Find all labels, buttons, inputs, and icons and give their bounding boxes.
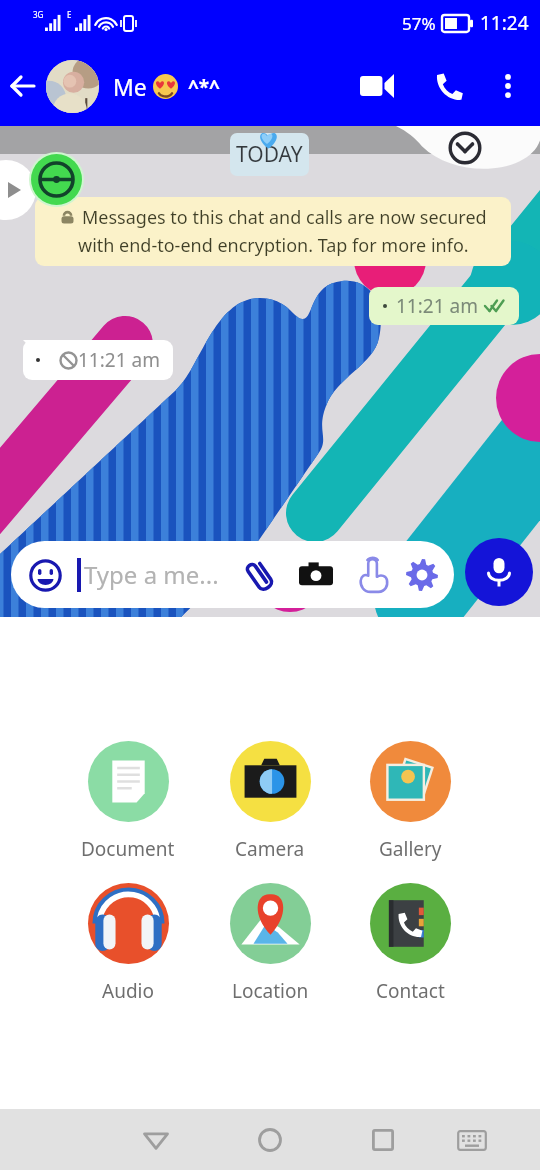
button[interactable]: Tap action [354,555,394,595]
button[interactable]: Document [58,741,198,862]
button[interactable]: Location [200,883,340,1004]
staticText: Type a me... [84,558,219,591]
button[interactable]: Attach [240,555,280,595]
button[interactable]: Me [46,46,347,126]
button[interactable]: Audio [58,883,198,1004]
staticText: Me [113,71,153,102]
staticText: Document [81,836,175,862]
button[interactable]: Call [419,56,479,116]
button[interactable]: Video call [347,56,407,116]
staticText: 3G [33,9,44,20]
button[interactable]: More options [479,57,537,115]
button[interactable]: TODAY [230,133,309,176]
staticText: 11:24 [480,10,529,36]
staticText: Messages to this chat and calls are now … [82,205,487,230]
button[interactable]: Gallery [340,741,480,862]
button[interactable]: Settings [402,555,442,595]
staticText: 11:21 am [396,293,478,319]
staticText: Camera [235,836,305,862]
button[interactable]: 11:21 am [369,287,519,325]
button[interactable]: Camera [296,555,336,595]
staticText: Contact [376,978,445,1004]
staticText: ^*^ [178,74,220,100]
button[interactable]: 11:21 am [23,340,173,380]
staticText: TODAY [236,140,303,169]
button[interactable]: Scroll to bottom [448,131,482,165]
staticText: 57% [402,12,436,35]
button[interactable]: Recents [353,1110,413,1170]
staticText: 11:21 am [78,347,160,373]
button[interactable]: Emoji [25,555,65,595]
button[interactable]: Contact [340,883,480,1004]
button[interactable]: Back [126,1110,186,1170]
staticText: with end-to-end encryption. Tap for more… [78,233,469,258]
staticText: Audio [102,978,154,1004]
button[interactable]: Camera [200,741,340,862]
button[interactable]: Screen recorder [31,154,82,205]
staticText: E [67,9,72,20]
button[interactable]: Back [0,63,46,109]
button[interactable]: Keyboard [442,1110,502,1170]
staticText: Location [232,978,309,1004]
staticText: Gallery [379,836,442,862]
button[interactable]: Voice message [465,538,533,606]
button[interactable]: Home [240,1110,300,1170]
button[interactable]: Messages to this chat and calls are now … [35,197,511,266]
